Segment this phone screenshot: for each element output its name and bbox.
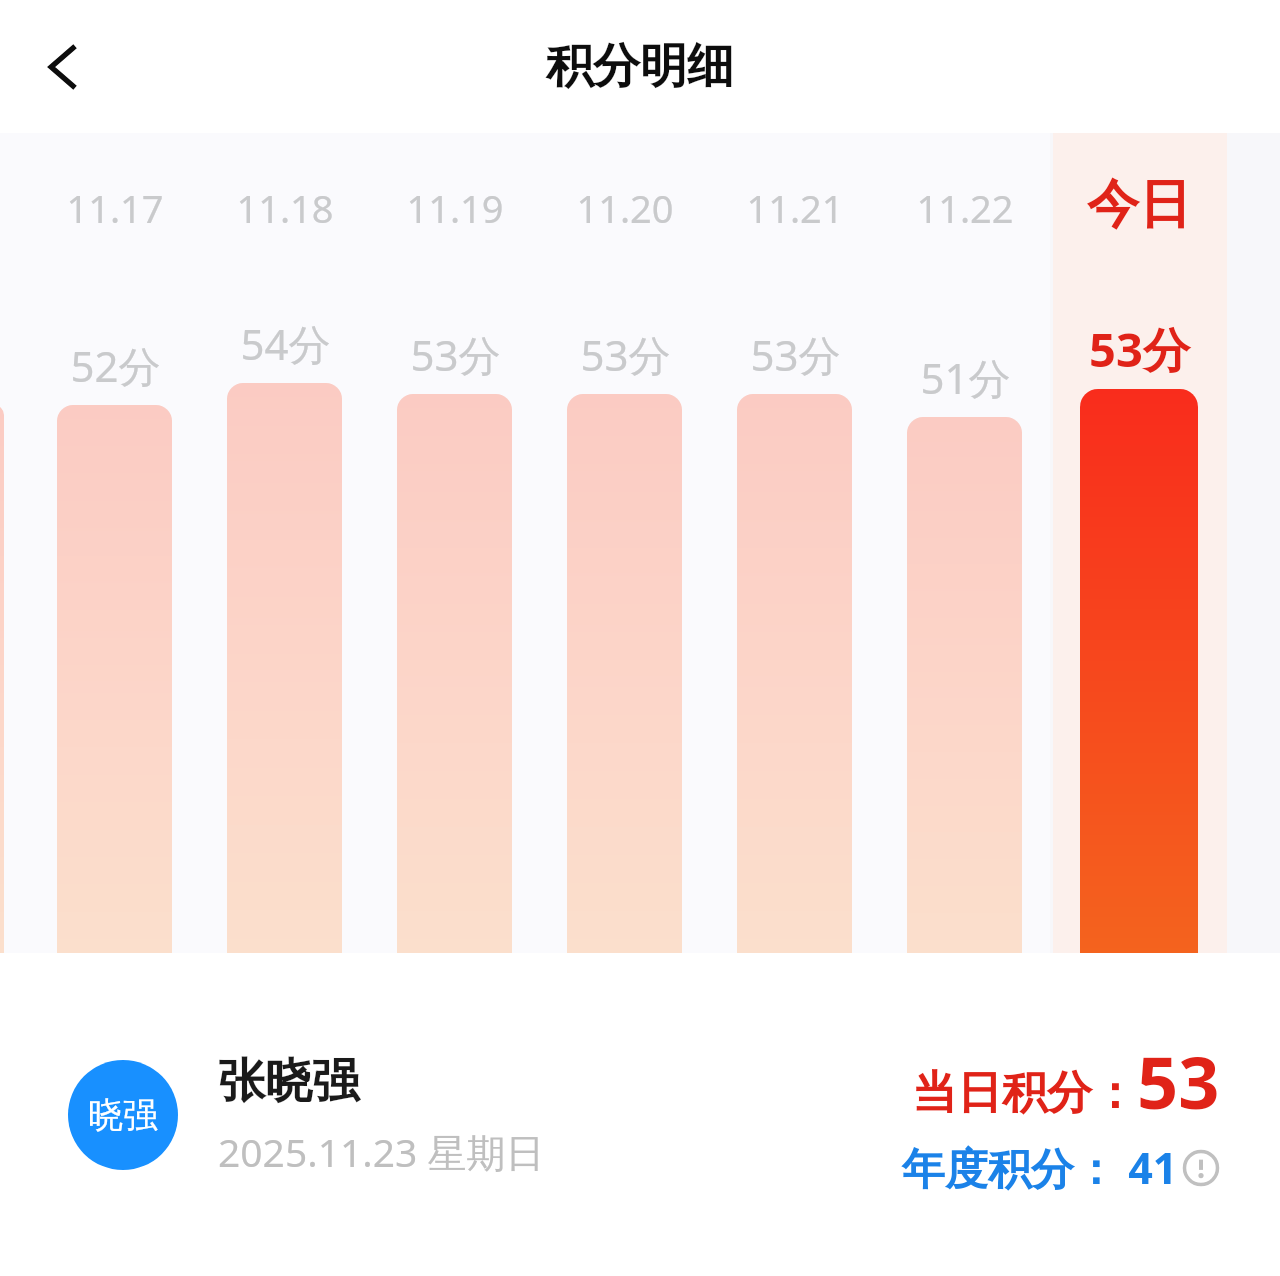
staticText: 53分: [410, 326, 501, 383]
other: Info: [1182, 1149, 1220, 1187]
button[interactable]: [227, 383, 342, 953]
button[interactable]: [57, 405, 172, 953]
staticText: 11.22: [916, 182, 1014, 234]
staticText: 11.19: [406, 182, 504, 234]
staticText: 当日积分：: [912, 1065, 1137, 1122]
button[interactable]: 年度积分： 41: [902, 1138, 1220, 1197]
staticText: 53分: [1089, 317, 1190, 381]
staticText: 11.17: [66, 182, 164, 234]
staticText: 53分: [580, 326, 671, 383]
staticText: 积分明细: [546, 37, 734, 96]
button[interactable]: [737, 394, 852, 953]
button[interactable]: [907, 417, 1022, 953]
staticText: 51分: [920, 349, 1011, 406]
staticText: 11.21: [746, 182, 844, 234]
button[interactable]: [567, 394, 682, 953]
button[interactable]: Back: [20, 23, 108, 111]
staticText: 年度积分： 41: [902, 1138, 1178, 1197]
staticText: 54分: [240, 315, 331, 372]
staticText: 53: [1137, 1032, 1220, 1130]
staticText: 晓强: [88, 1093, 158, 1137]
button[interactable]: [1053, 133, 1227, 953]
staticText: 11.20: [576, 182, 674, 234]
button[interactable]: [397, 394, 512, 953]
staticText: 11.18: [236, 182, 334, 234]
staticText: 今日: [1087, 172, 1191, 238]
button[interactable]: 晓强: [68, 1052, 545, 1178]
button[interactable]: 当日积分：: [912, 1032, 1220, 1130]
staticText: 张晓强: [218, 1052, 359, 1111]
staticText: 53分: [750, 326, 841, 383]
staticText: 52分: [70, 337, 161, 394]
staticText: 2025.11.23 星期日: [218, 1125, 545, 1178]
